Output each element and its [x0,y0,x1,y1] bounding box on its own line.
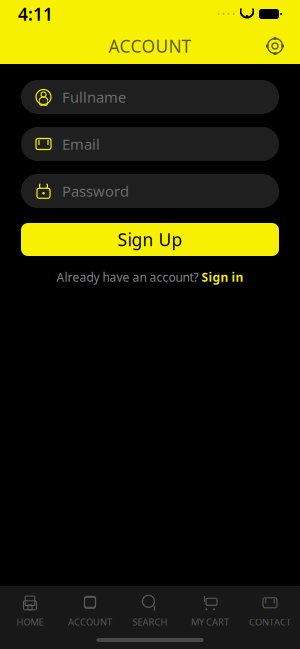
button[interactable]: Fullname [21,80,279,114]
button[interactable]: ACCOUNT [60,595,120,627]
button[interactable]: CONTACT [240,595,300,627]
button[interactable]: SEARCH [120,595,180,627]
staticText: Sign in [201,269,243,285]
button[interactable]: Email [21,127,279,161]
button[interactable]: MY CART [180,595,240,627]
staticText: Sign Up [117,228,182,251]
staticText: ACCOUNT [108,34,191,57]
staticText: Fullname [62,87,126,107]
staticText: MY CART [191,616,229,628]
button[interactable]: Password [21,174,279,208]
staticText: Already have an account? [56,269,198,285]
staticText: • • • • [217,9,235,19]
staticText: Password [62,181,129,201]
staticText: HOME [16,616,43,628]
button[interactable]: Already have an account? [21,269,279,285]
staticText: Email [62,134,100,154]
staticText: ACCOUNT [68,616,112,628]
button[interactable]: Settings [258,29,292,63]
button[interactable]: Sign Up [21,223,279,256]
staticText: CONTACT [249,616,291,628]
staticText: 4:11 [18,2,53,25]
button[interactable]: HOME [0,595,60,627]
staticText: SEARCH [132,616,167,628]
